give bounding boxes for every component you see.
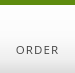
staticText: ORDER: [0, 42, 75, 58]
button[interactable]: ORDER: [0, 0, 75, 73]
